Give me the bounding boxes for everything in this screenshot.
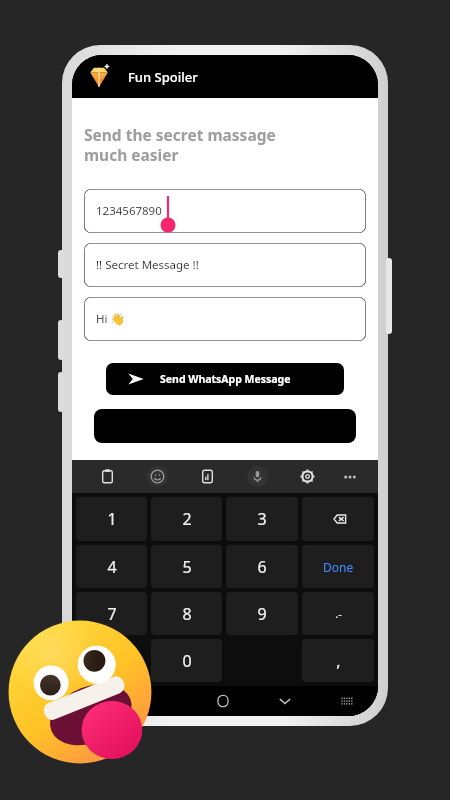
button[interactable]: 9 <box>226 592 298 635</box>
button[interactable]: 6 <box>226 545 298 588</box>
staticText: .- <box>335 606 342 621</box>
button[interactable]: 3 <box>226 497 298 541</box>
staticText: 1234567890 <box>96 203 162 219</box>
button[interactable]: 2 <box>151 497 222 541</box>
button[interactable]: App logo <box>86 64 112 90</box>
staticText: Send WhatsApp Message <box>160 372 291 386</box>
staticText: 0 <box>182 650 192 672</box>
button[interactable]: Send WhatsApp Message <box>106 363 344 395</box>
staticText: 9 <box>257 603 267 625</box>
button[interactable]: Settings <box>282 460 332 493</box>
button[interactable]: Home <box>192 686 254 716</box>
button[interactable]: Stickers <box>182 460 232 493</box>
button[interactable]: .- <box>302 592 374 635</box>
button[interactable]: Clipboard <box>82 460 132 493</box>
staticText: Send the secret massage much easier <box>84 124 276 165</box>
button[interactable]: More options <box>332 468 368 486</box>
button[interactable] <box>76 639 147 682</box>
button[interactable]: Secondary action <box>94 409 356 443</box>
button[interactable]: Voice input <box>232 460 282 493</box>
button[interactable]: !! Secret Message !! <box>84 243 366 287</box>
staticText: 2 <box>182 508 192 530</box>
staticText: Hi 👋 <box>96 311 125 327</box>
staticText: 1 <box>107 508 117 530</box>
button[interactable]: , <box>302 639 374 682</box>
staticText: Fun Spoiler <box>128 68 198 86</box>
button[interactable]: 4 <box>76 545 147 588</box>
staticText: 3 <box>257 508 267 530</box>
staticText: Done <box>323 559 354 575</box>
button[interactable]: 1 <box>76 497 147 541</box>
button[interactable]: 1234567890 <box>84 189 366 233</box>
button[interactable]: 7 <box>76 592 147 635</box>
button[interactable]: 8 <box>151 592 222 635</box>
button[interactable]: Done <box>302 545 374 588</box>
staticText: 7 <box>107 603 117 625</box>
staticText: 5 <box>182 556 192 578</box>
button[interactable]: 5 <box>151 545 222 588</box>
button[interactable]: Hi 👋 <box>84 297 366 341</box>
staticText: 6 <box>257 556 267 578</box>
button[interactable]: Back <box>254 686 316 716</box>
staticText: 4 <box>107 556 117 578</box>
button[interactable]: Backspace <box>302 497 374 541</box>
button[interactable]: Hide keyboard <box>316 686 378 716</box>
staticText: , <box>336 650 341 672</box>
staticText: !! Secret Message !! <box>96 257 199 273</box>
button[interactable]: 0 <box>151 639 222 682</box>
button[interactable]: Emoji <box>132 460 182 493</box>
staticText: 8 <box>182 603 192 625</box>
